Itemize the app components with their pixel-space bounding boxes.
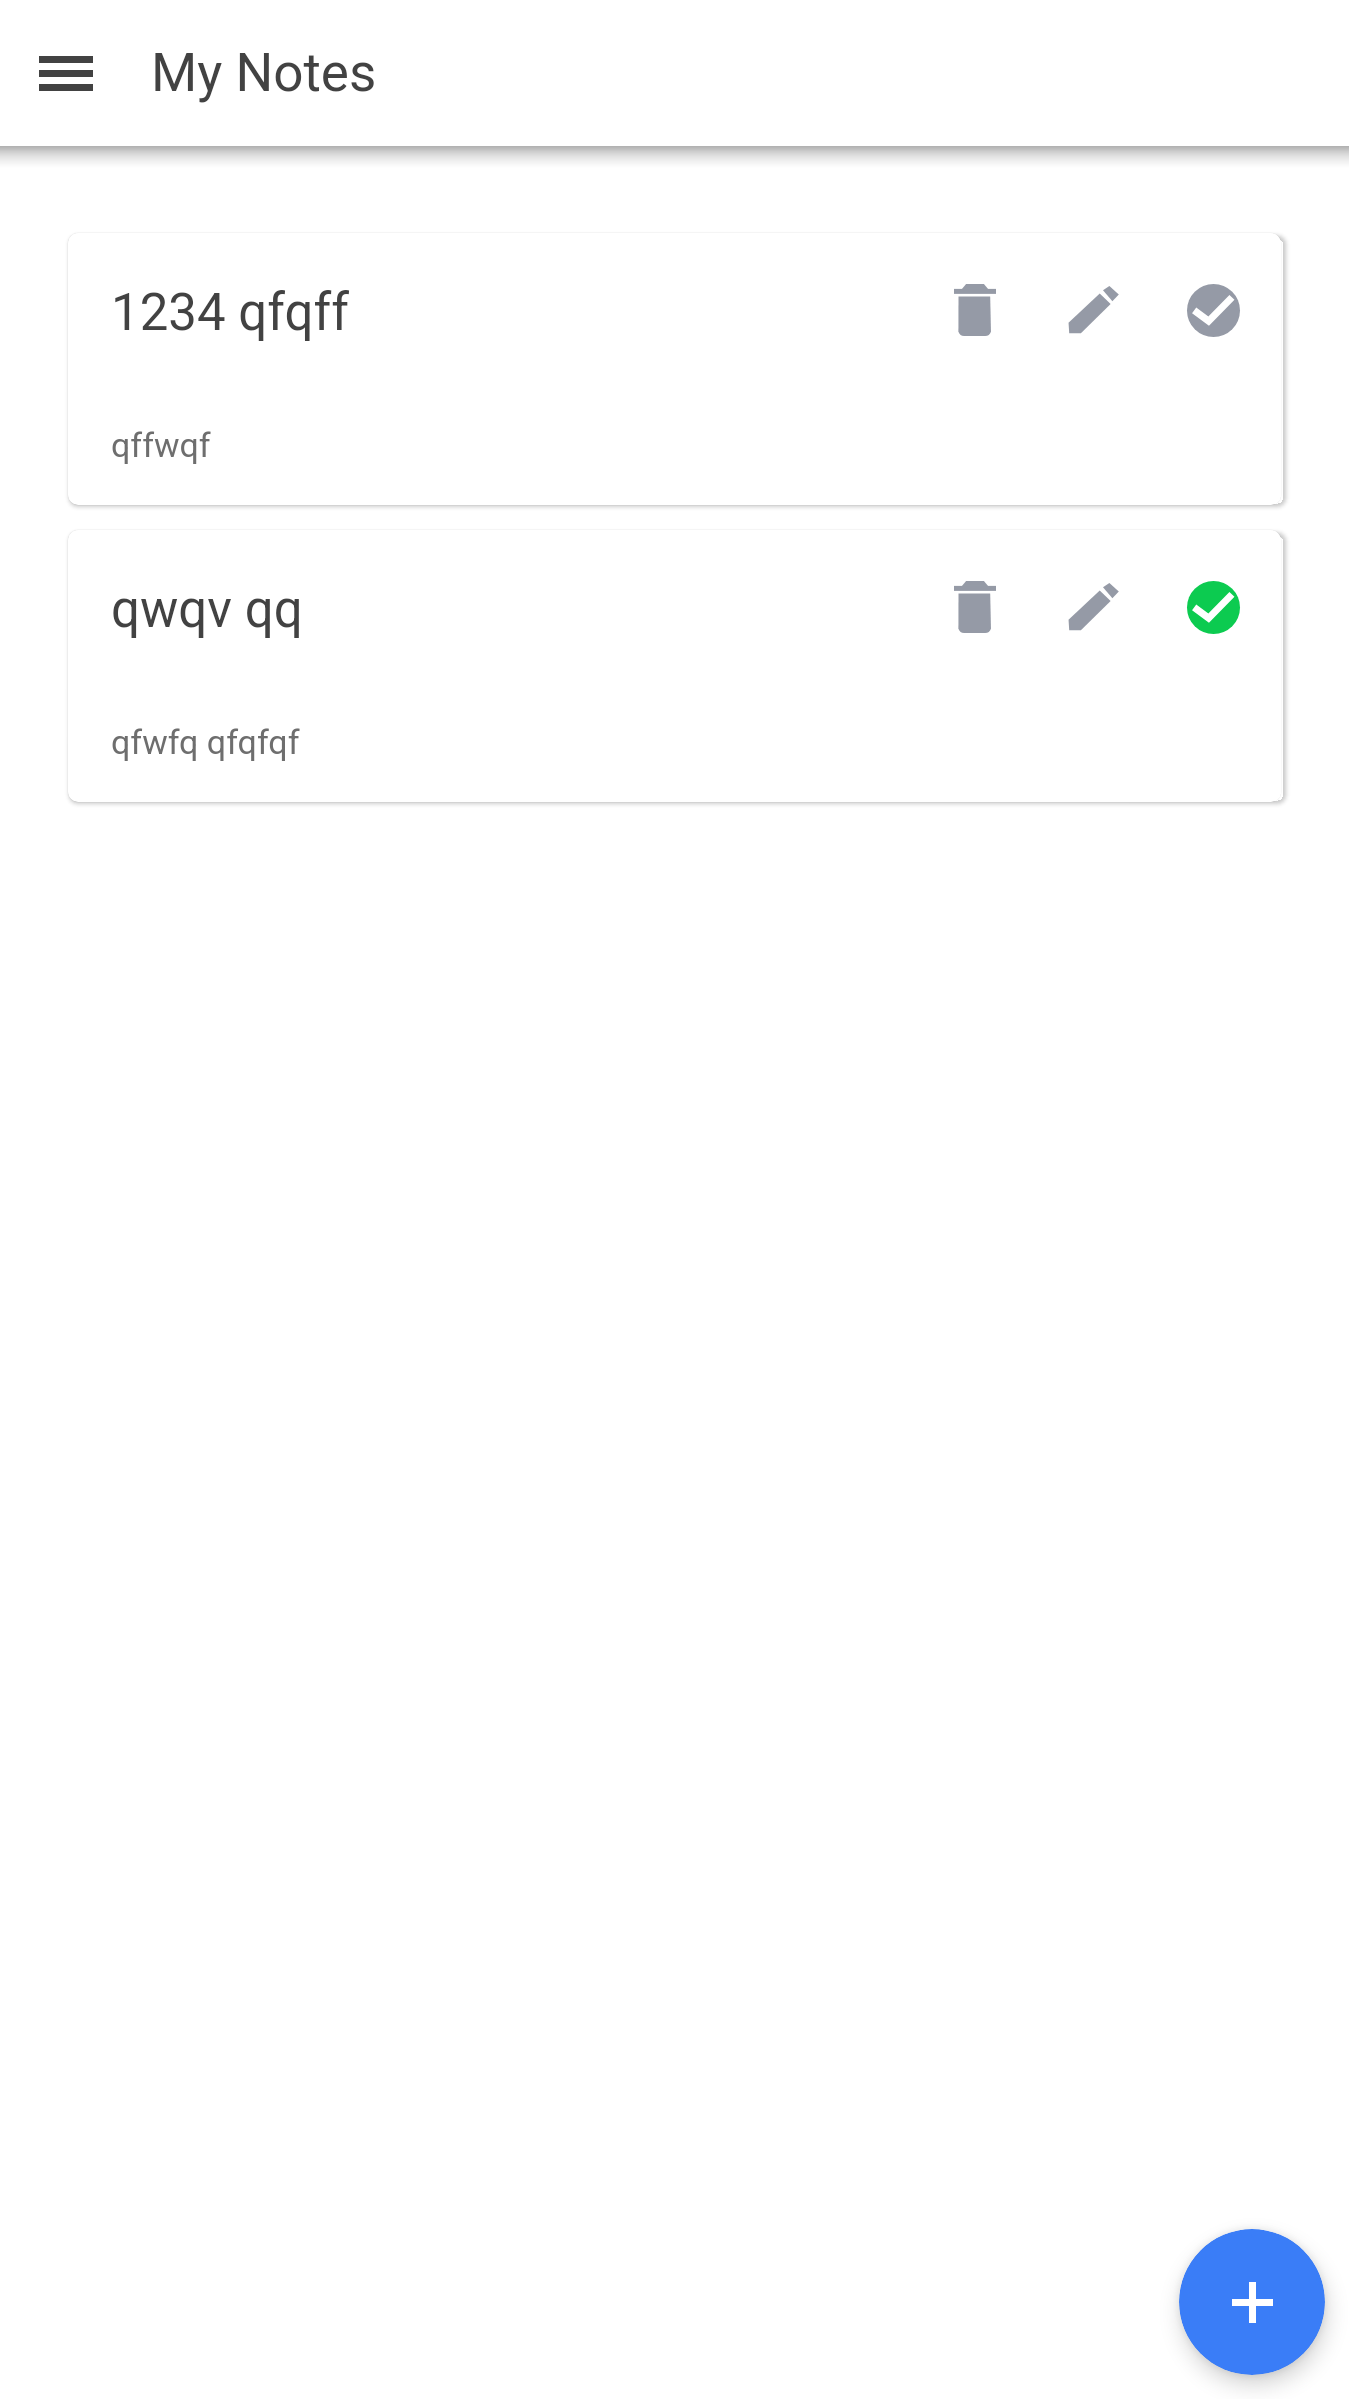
button[interactable]: qwqv qq bbox=[68, 530, 1281, 802]
button[interactable]: Menu bbox=[6, 13, 126, 133]
staticText: qfwfq qfqfqf bbox=[111, 722, 300, 762]
button[interactable]: Delete bbox=[943, 278, 1007, 342]
button[interactable]: Done bbox=[1181, 278, 1245, 342]
staticText: 1234 qfqff bbox=[111, 283, 349, 343]
button[interactable]: Done bbox=[1181, 575, 1245, 639]
staticText: qffwqf bbox=[111, 425, 211, 465]
button[interactable]: Edit bbox=[1062, 278, 1126, 342]
button[interactable]: Add note bbox=[1179, 2229, 1325, 2375]
staticText: My Notes bbox=[151, 42, 377, 104]
staticText: qwqv qq bbox=[111, 580, 303, 640]
button[interactable]: Edit bbox=[1062, 575, 1126, 639]
button[interactable]: 1234 qfqff bbox=[68, 233, 1281, 505]
button[interactable]: Delete bbox=[943, 575, 1007, 639]
